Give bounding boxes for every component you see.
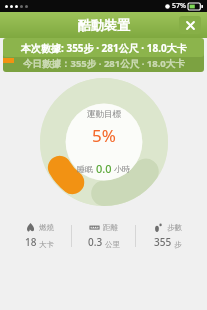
staticText: 大卡 xyxy=(39,240,54,249)
button[interactable]: 燃燒 xyxy=(8,221,71,251)
staticText: 本次數據: 355步 · 281公尺 · 18.0大卡 xyxy=(21,41,187,55)
button[interactable]: 本次數據: 355步 · 281公尺 · 18.0大卡 xyxy=(3,38,204,57)
staticText: 355 xyxy=(154,235,172,249)
staticText: 公里 xyxy=(105,240,120,249)
staticText: 57% xyxy=(172,1,186,11)
staticText: 0.0 xyxy=(96,161,112,176)
staticText: 距離 xyxy=(103,223,118,232)
staticText: 今日數據：355步 · 281公尺 · 18.0大卡 xyxy=(23,57,185,70)
staticText: 0.3 xyxy=(88,235,103,249)
button[interactable]: Close xyxy=(179,16,201,34)
button[interactable]: 距離 xyxy=(72,221,135,251)
staticText: 步 xyxy=(174,240,182,249)
button[interactable]: 運動目標 xyxy=(40,78,168,206)
staticText: 18 xyxy=(25,235,37,249)
button[interactable]: 步數 xyxy=(136,221,199,251)
staticText: 運動目標 xyxy=(87,109,121,120)
staticText: 步數 xyxy=(167,223,182,232)
staticText: 小時 xyxy=(112,163,131,174)
staticText: 睡眠 xyxy=(77,163,96,174)
staticText: 酷動裝置 xyxy=(78,17,130,33)
staticText: 燃燒 xyxy=(39,223,54,232)
staticText: 5% xyxy=(92,124,116,147)
